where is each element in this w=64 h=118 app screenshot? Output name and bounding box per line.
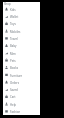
staticText: Toys — [10, 22, 16, 26]
button[interactable]: Furniture — [3, 71, 40, 78]
staticText: Furniture — [10, 74, 23, 78]
staticText: Kids — [10, 8, 16, 12]
staticText: Fashion — [10, 110, 21, 114]
button[interactable]: Toys — [3, 20, 40, 27]
staticText: Travel — [10, 37, 18, 41]
staticText: Orders — [10, 81, 20, 85]
staticText: Shop — [4, 2, 11, 6]
button[interactable]: Saved — [3, 86, 40, 93]
button[interactable]: Wallet — [3, 13, 40, 20]
staticText: Mobiles — [10, 30, 21, 34]
staticText: Saved — [10, 88, 18, 92]
button[interactable]: Pets — [3, 57, 40, 64]
staticText: Baby — [10, 44, 17, 48]
button[interactable]: Fashion — [3, 108, 40, 115]
staticText: Books — [10, 66, 19, 70]
button[interactable]: Orders — [3, 78, 40, 85]
button[interactable]: Help — [3, 100, 40, 107]
staticText: Wallet — [10, 15, 19, 19]
button[interactable]: Mobiles — [3, 27, 40, 34]
staticText: Help — [10, 103, 17, 107]
staticText: Pets — [10, 59, 16, 63]
button[interactable]: Kids — [3, 5, 40, 12]
staticText: Men — [10, 52, 16, 56]
button[interactable]: Baby — [3, 42, 40, 49]
staticText: Cart — [10, 95, 16, 99]
button[interactable]: Men — [3, 49, 40, 56]
button[interactable]: Cart — [3, 93, 40, 100]
button[interactable]: Books — [3, 64, 40, 71]
button[interactable]: Travel — [3, 35, 40, 42]
